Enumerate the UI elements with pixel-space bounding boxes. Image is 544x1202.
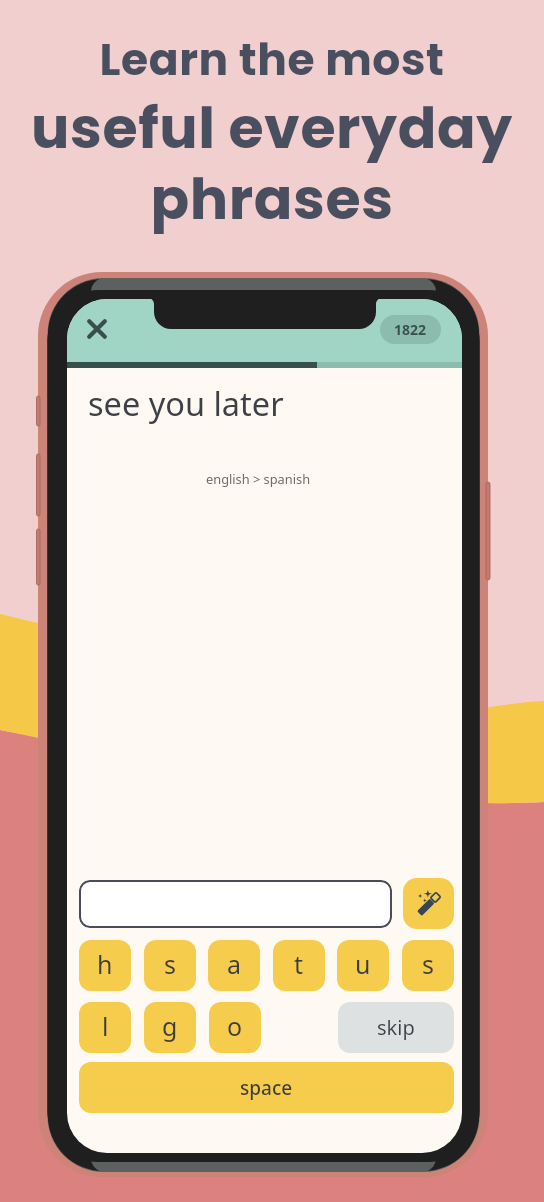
- button[interactable]: t: [273, 940, 325, 991]
- staticText: Learn the most: [99, 29, 445, 91]
- button[interactable]: l: [79, 1002, 131, 1053]
- staticText: h: [97, 947, 113, 981]
- button[interactable]: space: [79, 1062, 454, 1113]
- staticText: space: [240, 1075, 293, 1101]
- staticText: t: [294, 947, 304, 981]
- button[interactable]: 1822: [380, 315, 441, 344]
- staticText: 1822: [394, 320, 427, 339]
- button[interactable]: u: [337, 940, 389, 991]
- button[interactable]: h: [79, 940, 131, 991]
- staticText: a: [227, 947, 242, 981]
- button[interactable]: s: [144, 940, 196, 991]
- button[interactable]: [79, 880, 392, 928]
- staticText: phrases: [150, 159, 394, 239]
- staticText: s: [164, 947, 176, 981]
- staticText: o: [227, 1009, 243, 1043]
- staticText: u: [355, 947, 371, 981]
- staticText: s: [422, 947, 434, 981]
- button[interactable]: skip: [338, 1002, 454, 1053]
- button[interactable]: Close: [83, 315, 111, 343]
- button[interactable]: a: [208, 940, 260, 991]
- staticText: l: [102, 1009, 109, 1043]
- staticText: useful everyday: [31, 88, 513, 168]
- button[interactable]: o: [209, 1002, 261, 1053]
- button[interactable]: Hint: [403, 878, 454, 929]
- staticText: english > spanish: [206, 470, 311, 487]
- staticText: see you later: [88, 381, 284, 425]
- button[interactable]: g: [144, 1002, 196, 1053]
- staticText: skip: [377, 1014, 415, 1041]
- staticText: g: [162, 1009, 178, 1043]
- button[interactable]: s: [402, 940, 454, 991]
